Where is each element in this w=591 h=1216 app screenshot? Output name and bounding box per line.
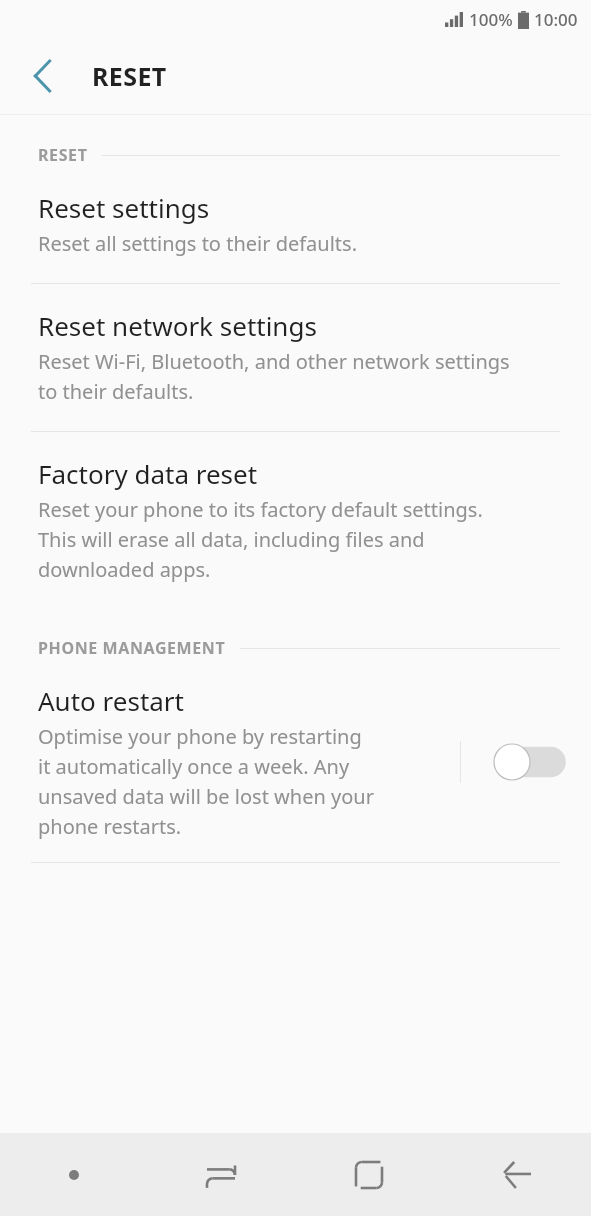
button[interactable]: Back [443, 1133, 591, 1216]
button[interactable]: Home [295, 1133, 443, 1216]
staticText: 100% [469, 8, 513, 31]
staticText: phone restarts. [38, 813, 182, 840]
button[interactable]: Reset network settings [0, 284, 591, 432]
staticText: Reset Wi-Fi, Bluetooth, and other networ… [38, 348, 510, 375]
button[interactable]: Factory data reset [0, 432, 591, 609]
staticText: Reset all settings to their defaults. [38, 230, 357, 257]
staticText: RESET [92, 59, 167, 93]
button[interactable]: Back [20, 54, 64, 98]
staticText: Reset your phone to its factory default … [38, 496, 483, 523]
button[interactable]: Auto restart [0, 659, 591, 863]
staticText: Factory data reset [38, 456, 258, 491]
staticText: it automatically once a week. Any [38, 753, 350, 780]
staticText: This will erase all data, including file… [38, 526, 425, 553]
button[interactable]: Recent apps [147, 1133, 295, 1216]
staticText: Reset network settings [38, 308, 317, 343]
button[interactable]: Reset settings [0, 166, 591, 284]
staticText: to their defaults. [38, 378, 194, 405]
staticText: unsaved data will be lost when your [38, 783, 374, 810]
staticText: downloaded apps. [38, 556, 211, 583]
staticText: Auto restart [38, 683, 184, 718]
staticText: PHONE MANAGEMENT [38, 637, 226, 659]
staticText: Reset settings [38, 190, 210, 225]
button[interactable]: Auto restart toggle, off [492, 739, 558, 785]
staticText: Optimise your phone by restarting [38, 723, 362, 750]
staticText: 10:00 [534, 8, 578, 31]
staticText: RESET [38, 144, 88, 166]
button[interactable]: Menu [0, 1133, 147, 1216]
